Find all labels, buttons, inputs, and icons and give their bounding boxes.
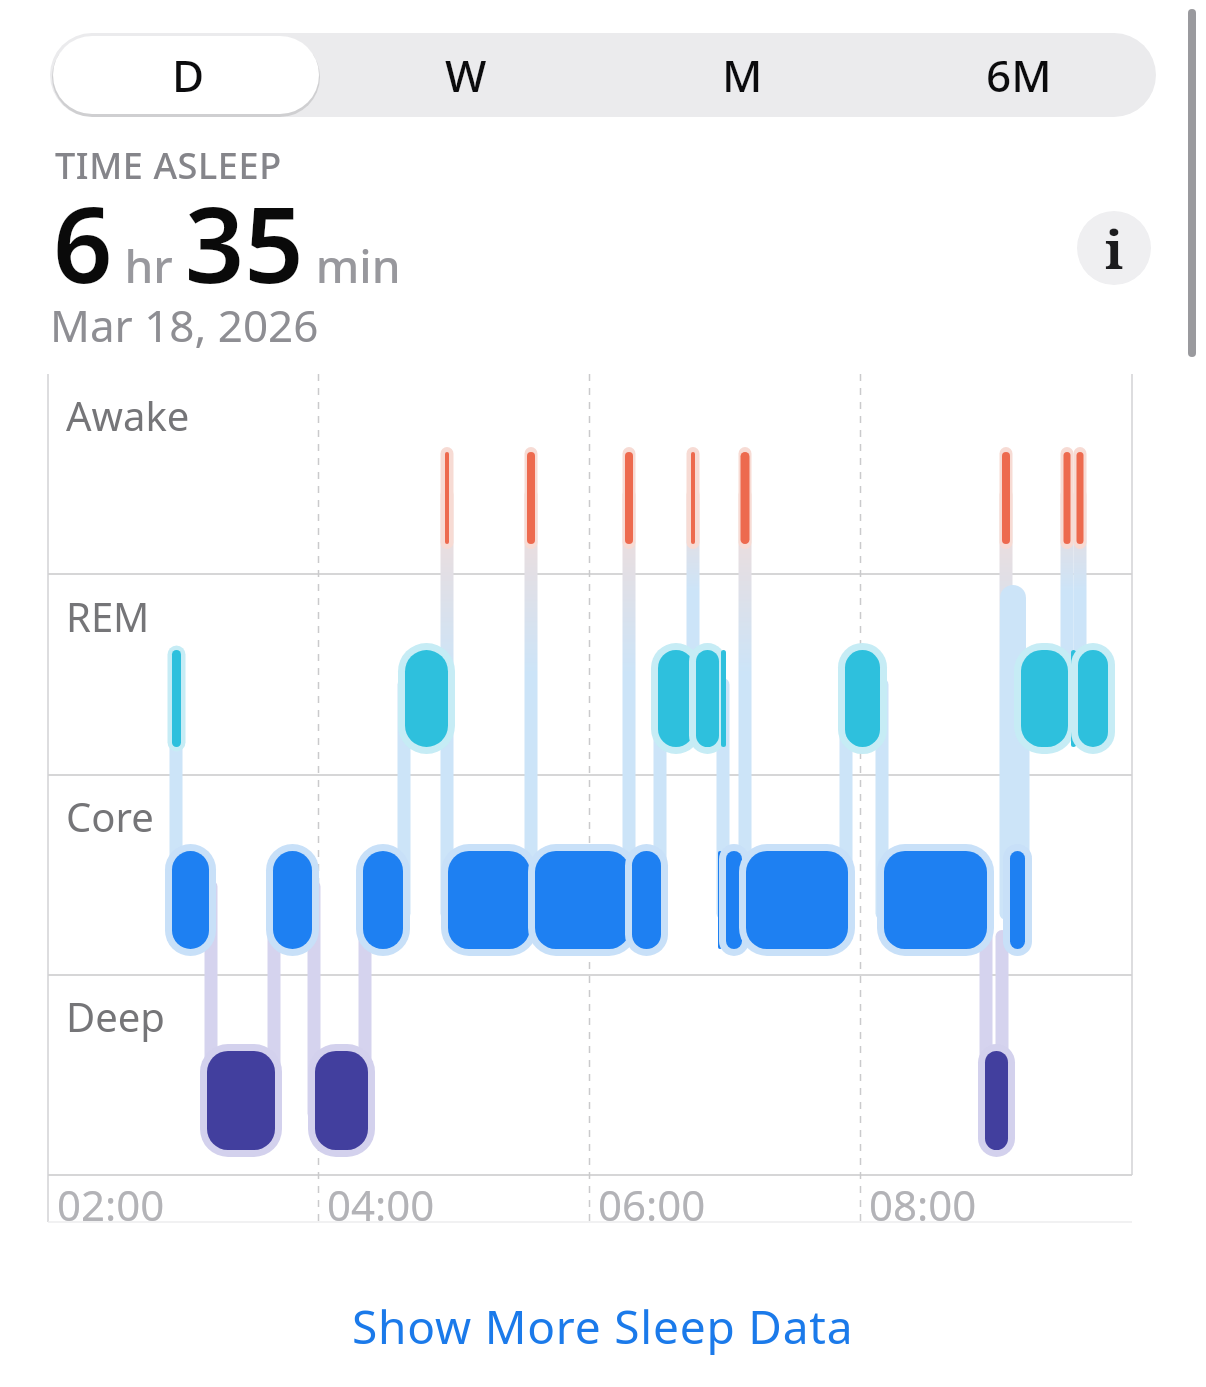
staticText: D [172, 45, 205, 105]
button[interactable]: Show More Sleep Data [352, 1295, 854, 1358]
button[interactable] [53, 36, 319, 114]
staticText: 06:00 [598, 1176, 706, 1233]
staticText: TIME ASLEEP [55, 141, 282, 190]
staticText: REM [66, 589, 150, 643]
staticText: W [445, 45, 487, 105]
staticText: 08:00 [869, 1176, 977, 1233]
staticText: Awake [66, 388, 190, 442]
staticText: M [722, 45, 763, 105]
staticText: 02:00 [57, 1176, 165, 1233]
staticText: Show More Sleep Data [352, 1295, 854, 1358]
staticText: 6M [986, 45, 1052, 105]
button[interactable]: D [50, 33, 327, 117]
button[interactable]: M [604, 33, 881, 117]
staticText: i [1105, 213, 1124, 284]
staticText: Mar 18, 2026 [50, 295, 319, 355]
button[interactable]: W [327, 33, 604, 117]
button[interactable]: 6M [881, 33, 1156, 117]
button[interactable]: i [1077, 211, 1151, 285]
staticText: Core [66, 789, 154, 843]
staticText: 04:00 [327, 1176, 435, 1233]
staticText: 6 hr 35 min [53, 172, 401, 314]
staticText: Deep [66, 989, 165, 1043]
